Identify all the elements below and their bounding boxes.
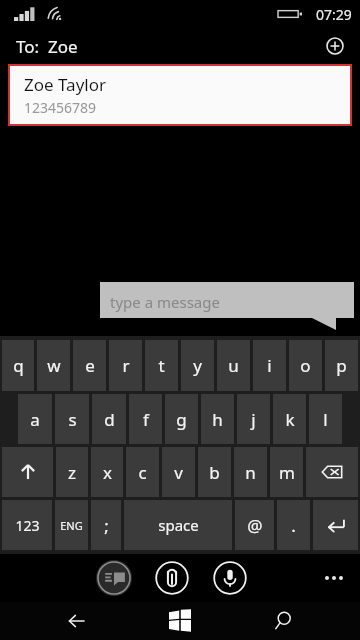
button[interactable]: Back bbox=[51, 602, 103, 640]
button[interactable]: @ bbox=[235, 500, 274, 550]
staticText: r bbox=[122, 354, 130, 377]
button[interactable] bbox=[100, 282, 354, 328]
button[interactable]: Add recipient bbox=[318, 29, 352, 63]
staticText: p bbox=[336, 354, 347, 377]
staticText: f bbox=[143, 408, 149, 431]
button[interactable]: m bbox=[270, 447, 303, 497]
button[interactable]: d bbox=[92, 394, 126, 444]
staticText: b bbox=[209, 461, 220, 484]
button[interactable]: f bbox=[129, 394, 162, 444]
staticText: g bbox=[176, 408, 187, 431]
button[interactable]: x bbox=[91, 447, 123, 497]
button[interactable]: Attach bbox=[154, 560, 190, 596]
staticText: space bbox=[158, 515, 199, 535]
button[interactable]: a bbox=[18, 394, 52, 444]
button[interactable]: v bbox=[162, 447, 195, 497]
staticText: z bbox=[68, 461, 76, 484]
button[interactable]: Shift bbox=[2, 447, 53, 497]
button[interactable]: Backspace bbox=[306, 447, 358, 497]
button[interactable]: Enter bbox=[313, 500, 358, 550]
staticText: t bbox=[158, 354, 165, 377]
staticText: n bbox=[245, 461, 256, 484]
button[interactable]: e bbox=[73, 340, 106, 391]
button[interactable]: j bbox=[237, 394, 270, 444]
staticText: x bbox=[103, 461, 112, 484]
button[interactable]: t bbox=[145, 340, 178, 391]
button[interactable]: s bbox=[55, 394, 89, 444]
button[interactable]: z bbox=[56, 447, 88, 497]
staticText: o bbox=[300, 354, 311, 377]
button[interactable]: Voice input bbox=[212, 560, 248, 596]
button[interactable]: q bbox=[2, 340, 34, 391]
staticText: 123 bbox=[15, 516, 40, 535]
staticText: d bbox=[104, 408, 115, 431]
staticText: m bbox=[279, 461, 295, 484]
staticText: 07:29 bbox=[316, 5, 352, 24]
button[interactable]: u bbox=[217, 340, 250, 391]
button[interactable]: space bbox=[124, 500, 232, 550]
button[interactable]: Emoji bbox=[96, 560, 132, 596]
staticText: c bbox=[138, 461, 147, 484]
staticText: y bbox=[193, 354, 202, 377]
staticText: a bbox=[30, 408, 40, 431]
button[interactable]: o bbox=[289, 340, 322, 391]
staticText: ; bbox=[104, 514, 109, 537]
button[interactable]: ; bbox=[91, 500, 121, 550]
staticText: Zoe Taylor bbox=[24, 73, 107, 96]
button[interactable]: ENG bbox=[55, 500, 88, 550]
button[interactable]: r bbox=[109, 340, 142, 391]
button[interactable]: Zoe Taylor bbox=[10, 66, 350, 124]
button[interactable]: More options bbox=[316, 560, 352, 596]
staticText: v bbox=[174, 461, 183, 484]
staticText: ENG bbox=[60, 518, 83, 533]
button[interactable]: l bbox=[309, 394, 342, 444]
button[interactable]: y bbox=[181, 340, 214, 391]
staticText: Zoe bbox=[48, 35, 78, 58]
button[interactable]: p bbox=[325, 340, 358, 391]
staticText: i bbox=[267, 354, 272, 377]
button[interactable]: n bbox=[234, 447, 267, 497]
staticText: h bbox=[212, 408, 223, 431]
staticText: w bbox=[47, 354, 61, 377]
button[interactable]: w bbox=[37, 340, 70, 391]
button[interactable]: k bbox=[273, 394, 306, 444]
staticText: j bbox=[251, 408, 256, 431]
button[interactable]: i bbox=[253, 340, 286, 391]
staticText: . bbox=[291, 514, 296, 537]
button[interactable]: 123 bbox=[2, 500, 52, 550]
button[interactable]: h bbox=[201, 394, 234, 444]
button[interactable]: Start bbox=[154, 602, 206, 640]
staticText: type a message bbox=[110, 292, 220, 312]
staticText: u bbox=[228, 354, 239, 377]
button[interactable]: g bbox=[165, 394, 198, 444]
staticText: q bbox=[13, 354, 24, 377]
staticText: @ bbox=[247, 514, 263, 537]
staticText: s bbox=[68, 408, 77, 431]
button[interactable]: . bbox=[277, 500, 310, 550]
staticText: k bbox=[285, 408, 295, 431]
staticText: l bbox=[323, 408, 328, 431]
button[interactable]: b bbox=[198, 447, 231, 497]
staticText: 123456789 bbox=[24, 98, 97, 117]
button[interactable]: Search bbox=[257, 602, 309, 640]
button[interactable]: c bbox=[126, 447, 159, 497]
staticText: To: bbox=[16, 35, 40, 58]
staticText: e bbox=[85, 354, 95, 377]
